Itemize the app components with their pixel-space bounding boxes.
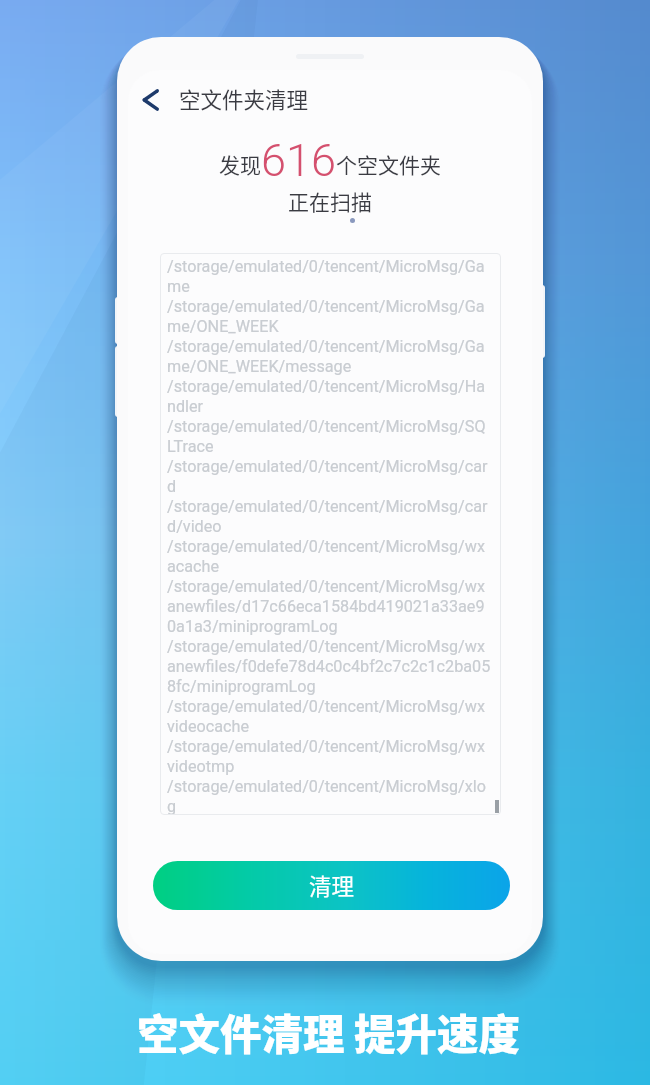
button[interactable]: Back [128, 78, 173, 122]
staticText: 616 [261, 134, 336, 187]
staticText: 清理 [309, 869, 355, 902]
staticText: 个空文件夹 [336, 149, 441, 179]
staticText: 发现 [219, 149, 261, 179]
staticText: 空文件清理 提升速度 [137, 1002, 521, 1062]
staticText: 空文件夹清理 [179, 83, 309, 114]
staticText: /​s​t​o​r​a​g​e​/​e​m​u​l​a​t​e​d​/​0​/​… [167, 257, 491, 815]
button[interactable]: 清理 [153, 861, 510, 910]
staticText: 正在扫描 [288, 186, 372, 216]
